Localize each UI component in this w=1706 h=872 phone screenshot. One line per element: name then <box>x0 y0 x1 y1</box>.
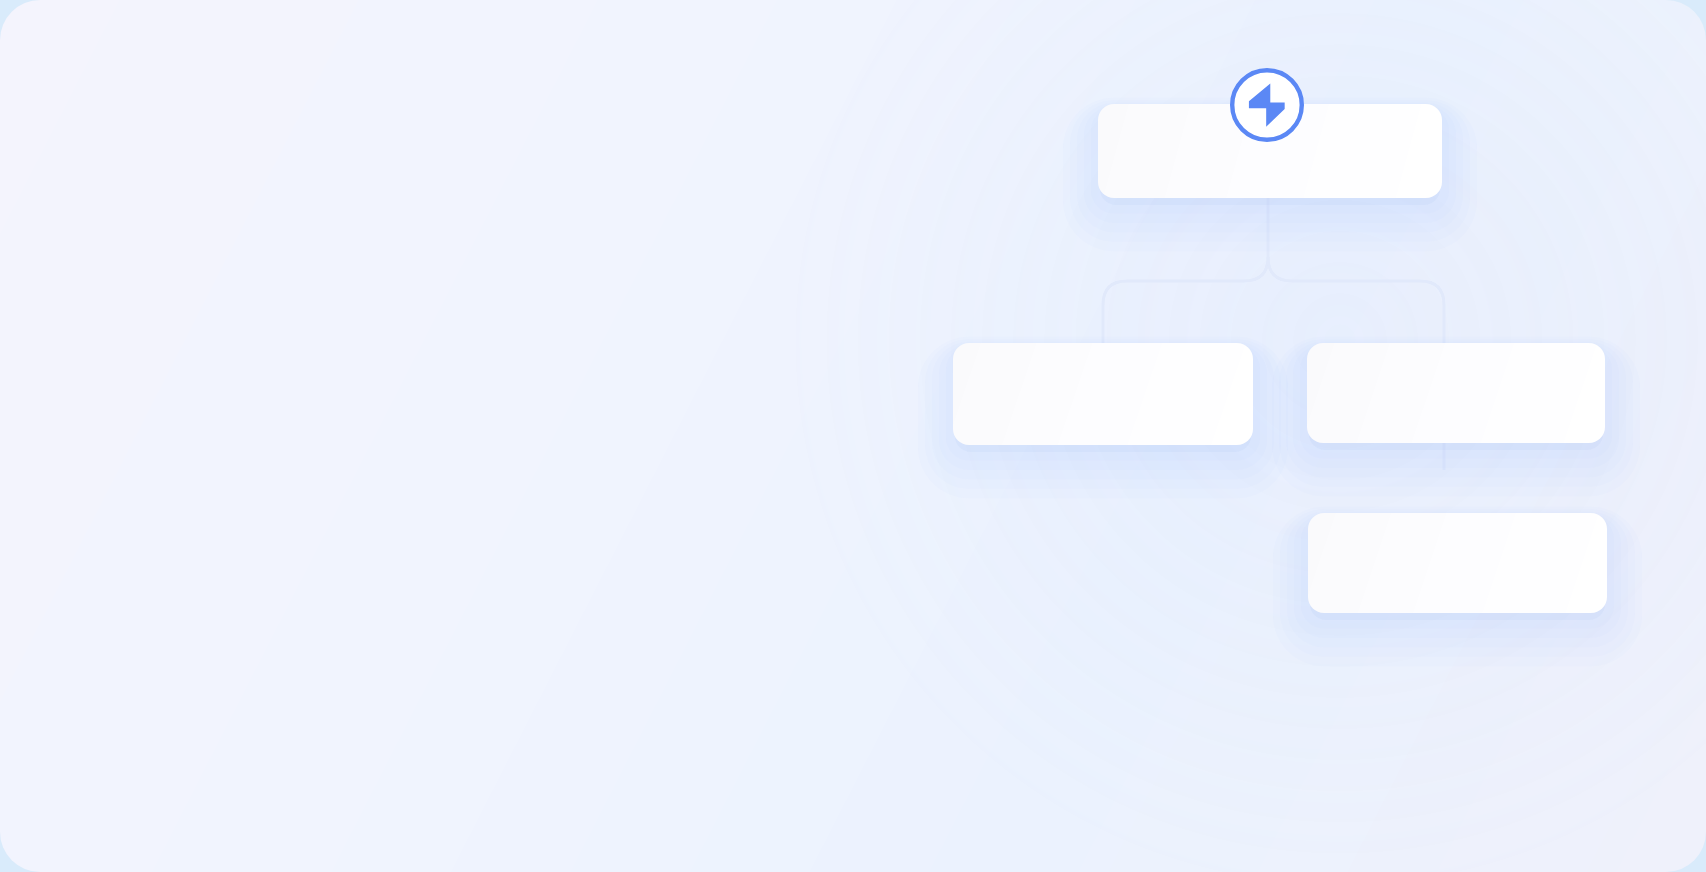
button[interactable]: Right action node <box>1307 343 1605 443</box>
button[interactable]: Trigger node <box>1098 104 1442 198</box>
button[interactable]: Automation trigger <box>1230 68 1304 142</box>
button[interactable]: Bottom action node <box>1308 513 1607 613</box>
button[interactable]: Left action node <box>953 343 1253 445</box>
